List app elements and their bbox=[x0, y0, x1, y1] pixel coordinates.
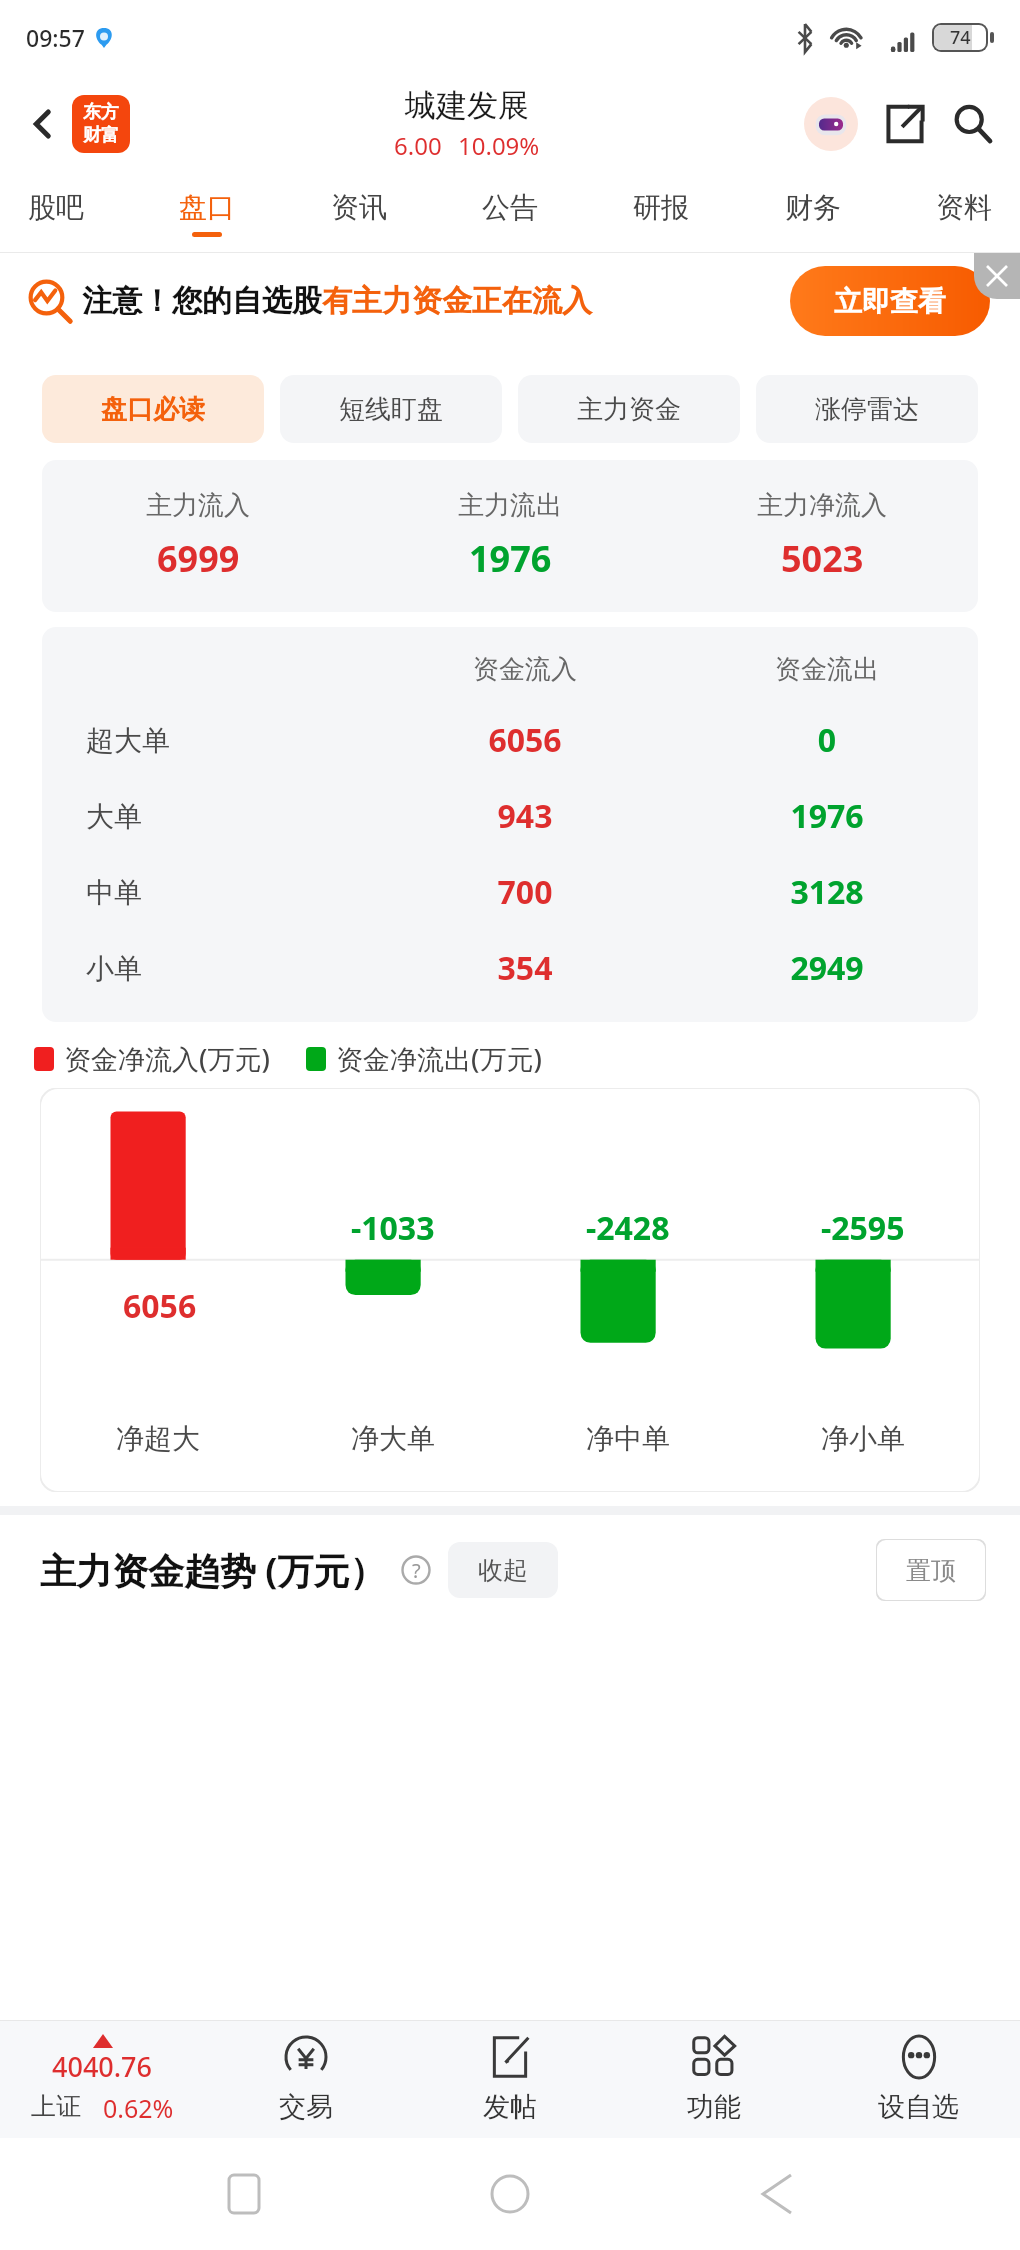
staticText: 净大单 bbox=[351, 1421, 435, 1456]
staticText: 主力资金趋势 (万元） bbox=[40, 1546, 386, 1595]
button[interactable]: 功能 bbox=[612, 2020, 816, 2138]
button[interactable]: 主力流入 bbox=[42, 460, 978, 612]
staticText: 盘口 bbox=[179, 190, 235, 225]
staticText: 财务 bbox=[785, 190, 841, 225]
button[interactable]: Close banner bbox=[974, 253, 1020, 299]
staticText: 设自选 bbox=[878, 2090, 959, 2124]
button[interactable]: 财务 bbox=[779, 190, 847, 237]
button[interactable]: 4040.76 bbox=[0, 2020, 204, 2138]
staticText: 研报 bbox=[633, 190, 689, 225]
button[interactable]: 东方 bbox=[72, 95, 130, 153]
button[interactable]: 主力资金 bbox=[518, 375, 740, 443]
staticText: 资料 bbox=[936, 190, 992, 225]
staticText: 6999 bbox=[157, 534, 240, 583]
staticText: 城建发展 bbox=[405, 86, 529, 125]
button[interactable]: 交易 bbox=[204, 2020, 408, 2138]
staticText: 943 bbox=[374, 794, 676, 838]
staticText: 股吧 bbox=[28, 190, 84, 225]
staticText: 涨停雷达 bbox=[815, 393, 919, 426]
staticText: 6.00 bbox=[394, 129, 442, 162]
staticText: 1976 bbox=[469, 534, 552, 583]
staticText: 净超大 bbox=[116, 1421, 200, 1456]
staticText: 发帖 bbox=[483, 2090, 537, 2124]
button[interactable]: AI assistant bbox=[804, 97, 858, 151]
staticText: 大单 bbox=[86, 799, 142, 834]
button[interactable]: Back bbox=[20, 101, 66, 147]
staticText: 主力流入 bbox=[146, 489, 250, 522]
button[interactable]: 资讯 bbox=[325, 190, 393, 237]
staticText: 主力流出 bbox=[458, 489, 562, 522]
staticText: 资金净流出(万元) bbox=[336, 1040, 542, 1077]
button[interactable]: 发帖 bbox=[408, 2020, 612, 2138]
staticText: 6056 bbox=[374, 718, 676, 762]
staticText: 74 bbox=[950, 25, 971, 50]
staticText: 交易 bbox=[279, 2090, 333, 2124]
staticText: 主力净流入 bbox=[757, 489, 887, 522]
staticText: 0 bbox=[676, 718, 978, 762]
staticText: 资讯 bbox=[331, 190, 387, 225]
staticText: ? bbox=[412, 1557, 421, 1584]
staticText: 2949 bbox=[676, 946, 978, 990]
button[interactable]: Recents bbox=[221, 2171, 267, 2217]
button[interactable]: 盘口必读 bbox=[42, 375, 264, 443]
button[interactable]: 研报 bbox=[627, 190, 695, 237]
staticText: -2595 bbox=[821, 1206, 905, 1250]
staticText: 净中单 bbox=[586, 1421, 670, 1456]
staticText: 资金净流入(万元) bbox=[64, 1040, 270, 1077]
staticText: 超大单 bbox=[86, 723, 170, 758]
button[interactable]: 设自选 bbox=[816, 2020, 1020, 2138]
staticText: 中单 bbox=[86, 875, 142, 910]
staticText: 有主力资金正在流入 bbox=[322, 282, 592, 320]
staticText: 3128 bbox=[676, 870, 978, 914]
staticText: 10.09% bbox=[458, 129, 540, 162]
staticText: 财富 bbox=[83, 124, 119, 147]
staticText: 资金流入 bbox=[374, 653, 676, 686]
button[interactable]: Share bbox=[880, 99, 930, 149]
button[interactable]: Search bbox=[948, 99, 998, 149]
staticText: 净小单 bbox=[821, 1421, 905, 1456]
staticText: -1033 bbox=[351, 1206, 435, 1250]
staticText: -2428 bbox=[586, 1206, 670, 1250]
staticText: 盘口必读 bbox=[101, 393, 205, 426]
button[interactable]: 短线盯盘 bbox=[280, 375, 502, 443]
staticText: 6056 bbox=[123, 1284, 197, 1328]
button[interactable]: 资料 bbox=[930, 190, 998, 237]
staticText: 5023 bbox=[781, 534, 864, 583]
button[interactable]: Home bbox=[487, 2171, 533, 2217]
staticText: 354 bbox=[374, 946, 676, 990]
staticText: 功能 bbox=[687, 2090, 741, 2124]
staticText: 注意！您的自选股 bbox=[82, 282, 322, 320]
button[interactable]: 收起 bbox=[448, 1542, 558, 1598]
button[interactable]: 6056 bbox=[40, 1088, 980, 1492]
staticText: 小单 bbox=[86, 951, 142, 986]
staticText: 东方 bbox=[83, 101, 119, 124]
staticText: 置顶 bbox=[906, 1555, 956, 1586]
staticText: 收起 bbox=[478, 1555, 528, 1586]
staticText: 09:57 bbox=[26, 22, 85, 53]
staticText: 资金流出 bbox=[676, 653, 978, 686]
button[interactable]: 立即查看 bbox=[790, 266, 990, 336]
button[interactable]: 资金流入 bbox=[42, 627, 978, 1022]
button[interactable]: Back bbox=[754, 2171, 800, 2217]
staticText: 上证 bbox=[31, 2091, 81, 2122]
staticText: 立即查看 bbox=[834, 284, 946, 319]
button[interactable]: 涨停雷达 bbox=[756, 375, 978, 443]
staticText: 1976 bbox=[676, 794, 978, 838]
button[interactable]: 置顶 bbox=[876, 1539, 986, 1601]
staticText: 700 bbox=[374, 870, 676, 914]
button[interactable]: Help bbox=[398, 1552, 434, 1588]
button[interactable]: 盘口 bbox=[173, 190, 241, 237]
button[interactable]: 公告 bbox=[476, 190, 544, 237]
staticText: 4040.76 bbox=[52, 2048, 153, 2085]
staticText: 0.62% bbox=[103, 2091, 174, 2125]
staticText: 短线盯盘 bbox=[339, 393, 443, 426]
staticText: 公告 bbox=[482, 190, 538, 225]
button[interactable]: 注意！您的自选股 bbox=[28, 253, 1020, 349]
button[interactable]: 股吧 bbox=[22, 190, 90, 237]
staticText: 主力资金 bbox=[577, 393, 681, 426]
